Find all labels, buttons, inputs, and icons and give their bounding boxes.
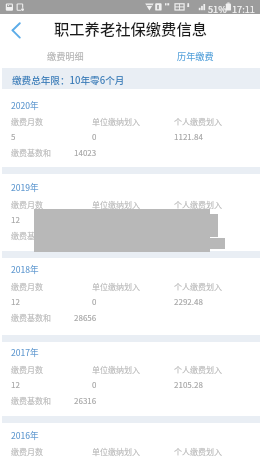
staticText: 个人缴费划入 bbox=[174, 446, 222, 458]
staticText: 个人缴费划入 bbox=[174, 281, 222, 293]
staticText: 2105.28 bbox=[174, 379, 203, 391]
staticText: 缴费基数和 bbox=[11, 147, 51, 159]
staticText: 2017年 bbox=[11, 346, 39, 358]
staticText: 2020年 bbox=[11, 99, 39, 111]
staticText: 0 bbox=[92, 296, 97, 308]
staticText: 12 bbox=[11, 214, 20, 226]
staticText: 缴费月数 bbox=[11, 281, 43, 293]
staticText: 缴费月数 bbox=[11, 446, 43, 458]
staticText: 个人缴费划入 bbox=[174, 364, 222, 376]
staticText: 缴费月数 bbox=[11, 116, 43, 128]
staticText: 26316 bbox=[74, 395, 97, 407]
staticText: 缴费明细 bbox=[47, 49, 84, 62]
staticText: 单位缴纳划入 bbox=[92, 364, 140, 376]
staticText: 职工养老社保缴费信息 bbox=[54, 17, 207, 39]
staticText: 个人缴费划入 bbox=[174, 199, 222, 211]
button[interactable]: Back bbox=[4, 18, 28, 42]
staticText: 17:11 bbox=[232, 2, 255, 15]
staticText: 2292.48 bbox=[174, 296, 203, 308]
staticText: 0 bbox=[92, 131, 97, 143]
button[interactable]: 缴费明细 bbox=[0, 45, 130, 69]
staticText: 单位缴纳划入 bbox=[92, 281, 140, 293]
staticText: 28656 bbox=[74, 312, 97, 324]
staticText: 缴费基数和 bbox=[11, 312, 51, 324]
staticText: 2016年 bbox=[11, 429, 39, 441]
staticText: 2018年 bbox=[11, 263, 39, 275]
staticText: 单位缴纳划入 bbox=[92, 116, 140, 128]
staticText: 缴费月数 bbox=[11, 199, 43, 211]
staticText: 0 bbox=[92, 379, 97, 391]
staticText: 缴费基数和 bbox=[11, 395, 51, 407]
staticText: 12 bbox=[11, 379, 20, 391]
staticText: 5 bbox=[11, 131, 16, 143]
staticText: 51% bbox=[208, 2, 227, 15]
staticText: 历年缴费 bbox=[177, 49, 214, 62]
staticText: 缴费基数和 bbox=[11, 230, 51, 242]
staticText: 1121.84 bbox=[174, 131, 203, 143]
staticText: 14023 bbox=[74, 147, 97, 159]
staticText: 12 bbox=[11, 296, 20, 308]
staticText: 单位缴纳划入 bbox=[92, 199, 140, 211]
staticText: 缴费月数 bbox=[11, 364, 43, 376]
button[interactable]: 历年缴费 bbox=[130, 45, 260, 69]
staticText: 个人缴费划入 bbox=[174, 116, 222, 128]
staticText: 单位缴纳划入 bbox=[92, 446, 140, 458]
staticText: 2019年 bbox=[11, 181, 39, 193]
staticText: 缴费总年限：10年零6个月 bbox=[12, 73, 125, 87]
